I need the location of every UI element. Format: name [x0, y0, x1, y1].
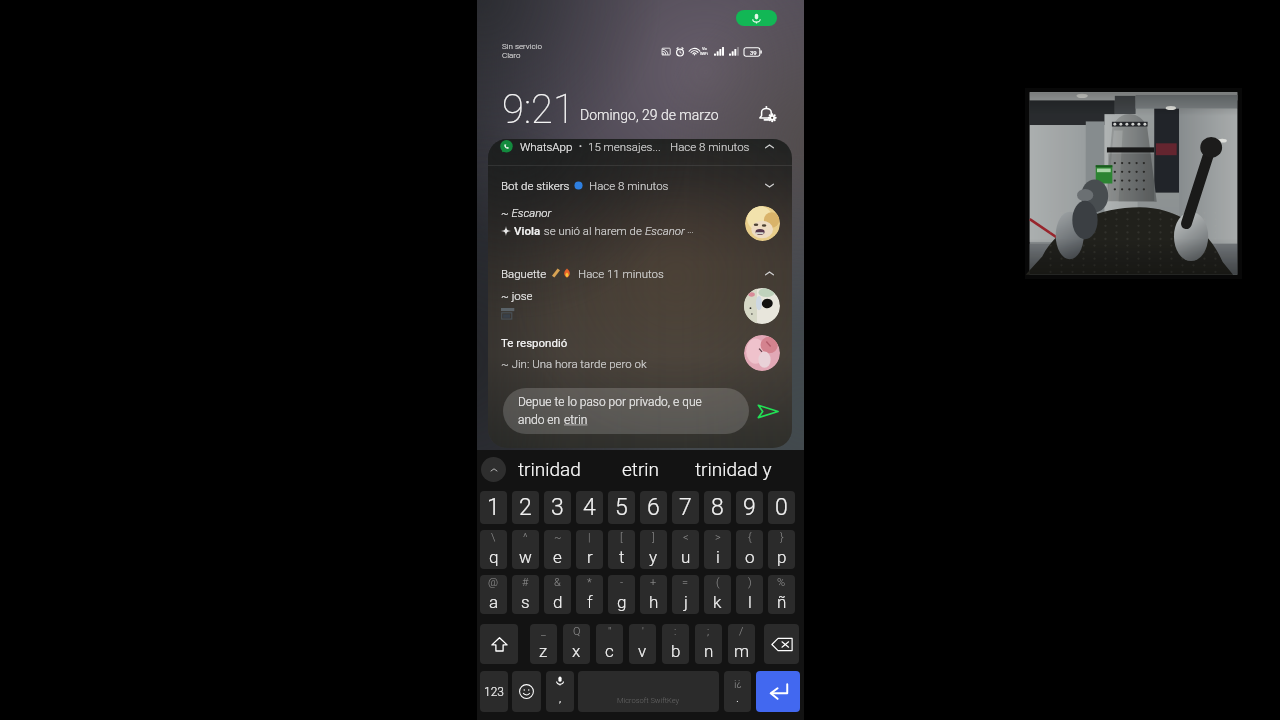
staticText: ¡¿	[734, 676, 742, 689]
staticText: w	[519, 547, 532, 567]
button[interactable]: \	[480, 530, 507, 569]
button[interactable]: >	[704, 530, 731, 569]
button[interactable]: trinidad y	[689, 450, 777, 488]
staticText: ñ	[777, 592, 787, 612]
button[interactable]: 1	[480, 491, 507, 524]
button[interactable]: 7	[672, 491, 699, 524]
button[interactable]: +	[640, 575, 667, 614]
staticText: 0	[775, 494, 788, 521]
button[interactable]: {	[736, 530, 763, 569]
staticText: 9:21	[502, 86, 575, 133]
staticText: l	[748, 592, 752, 612]
button[interactable]: Depue te lo paso por privado, e que	[503, 388, 749, 434]
button[interactable]: Microphone in use	[736, 10, 777, 26]
staticText: Depue te lo paso por privado, e que	[518, 395, 702, 409]
staticText: se unió al harem de	[541, 224, 645, 237]
button[interactable]: '	[629, 624, 656, 664]
button[interactable]: 123	[480, 671, 508, 712]
button[interactable]: "	[596, 624, 623, 664]
staticText: Hace 8 minutos	[589, 179, 669, 192]
staticText: Sin servicio	[502, 42, 542, 51]
staticText: f	[587, 592, 593, 612]
staticText: m	[734, 641, 750, 661]
button[interactable]: 3	[544, 491, 571, 524]
button[interactable]: WhatsApp	[488, 139, 792, 154]
button[interactable]: #	[512, 575, 539, 614]
button[interactable]: Voice input	[546, 671, 574, 712]
button[interactable]: =	[672, 575, 699, 614]
staticText: y	[649, 547, 658, 567]
staticText: WhatsApp	[520, 140, 573, 153]
staticText: ,	[559, 692, 562, 705]
button[interactable]: 2	[512, 491, 539, 524]
button[interactable]: (	[704, 575, 731, 614]
staticText: +	[650, 576, 657, 589]
button[interactable]: *	[576, 575, 603, 614]
staticText: Claro	[502, 51, 521, 60]
staticText: :	[674, 625, 677, 638]
staticText: (	[716, 576, 720, 589]
staticText: Domingo, 29 de marzo	[580, 107, 719, 123]
button[interactable]: ~ jose	[488, 289, 792, 329]
button[interactable]: Notification settings	[753, 100, 780, 127]
staticText: 7	[679, 494, 692, 521]
staticText: '	[642, 625, 644, 638]
button[interactable]: -	[608, 575, 635, 614]
button[interactable]: Expand suggestions	[481, 457, 506, 482]
staticText: 15 mensajes...	[588, 140, 661, 153]
button[interactable]: 4	[576, 491, 603, 524]
button[interactable]: 6	[640, 491, 667, 524]
staticText: g	[617, 592, 627, 612]
staticText: [	[620, 531, 623, 544]
button[interactable]: %	[768, 575, 795, 614]
button[interactable]: |	[576, 530, 603, 569]
button[interactable]: ]	[640, 530, 667, 569]
button[interactable]: Backspace	[764, 624, 799, 664]
button[interactable]: @	[480, 575, 507, 614]
button[interactable]: etrin	[592, 450, 689, 488]
button[interactable]: _	[530, 624, 557, 664]
button[interactable]: &	[544, 575, 571, 614]
button[interactable]: ~	[544, 530, 571, 569]
staticText: s	[521, 592, 530, 612]
staticText: •	[579, 141, 582, 152]
button[interactable]: trinidad	[506, 450, 592, 488]
staticText: ~ Jin: Una hora tarde pero ok	[501, 357, 647, 370]
staticText: 9	[743, 494, 756, 521]
staticText: n	[704, 641, 714, 661]
button[interactable]: Emoji	[512, 671, 541, 712]
staticText: /	[739, 625, 744, 638]
button[interactable]: )	[736, 575, 763, 614]
staticText: ...	[685, 225, 694, 236]
button[interactable]: Q	[563, 624, 590, 664]
button[interactable]: Shift	[480, 624, 518, 664]
staticText: >	[715, 531, 721, 544]
staticText: trinidad	[518, 458, 581, 480]
button[interactable]: 5	[608, 491, 635, 524]
button[interactable]: ~ Escanor	[488, 206, 792, 246]
button[interactable]: Te respondió	[488, 336, 792, 376]
button[interactable]: Baguette	[488, 262, 792, 284]
button[interactable]: /	[728, 624, 755, 664]
button[interactable]: [	[608, 530, 635, 569]
button[interactable]: Send	[754, 397, 782, 425]
button[interactable]: }	[768, 530, 795, 569]
staticText: 4	[583, 494, 596, 521]
button[interactable]: Microsoft SwiftKey	[578, 671, 719, 712]
button[interactable]: ¡¿	[724, 671, 751, 712]
button[interactable]: 0	[768, 491, 795, 524]
button[interactable]: Bot de stikers	[488, 174, 792, 196]
button[interactable]: :	[662, 624, 689, 664]
button[interactable]: Enter	[756, 671, 800, 712]
staticText: Hace 11 minutos	[578, 267, 664, 280]
button[interactable]: 8	[704, 491, 731, 524]
button[interactable]: <	[672, 530, 699, 569]
staticText: 1	[487, 494, 500, 521]
button[interactable]: ;	[695, 624, 722, 664]
staticText: ^	[523, 531, 528, 544]
staticText: h	[649, 592, 659, 612]
button[interactable]: ^	[512, 530, 539, 569]
staticText: trinidad y	[695, 458, 772, 480]
button[interactable]: 9	[736, 491, 763, 524]
staticText: i	[716, 547, 720, 567]
